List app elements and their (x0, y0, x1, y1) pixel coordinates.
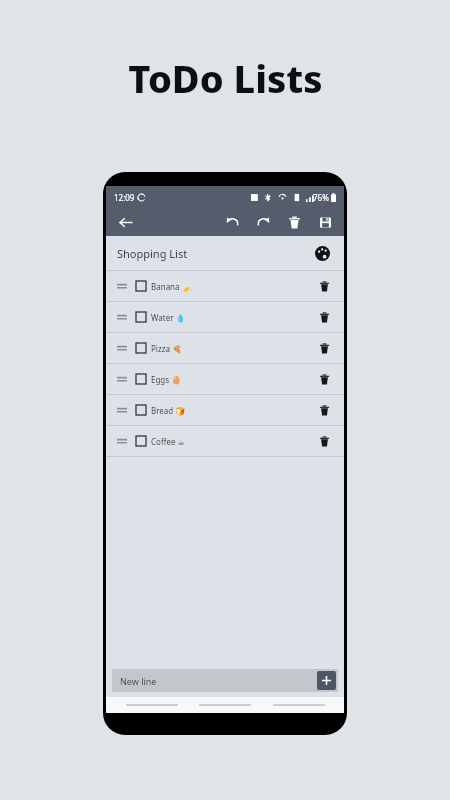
button[interactable]: Reorder (106, 271, 344, 301)
other: Reorder (117, 436, 127, 446)
button[interactable]: Redo (253, 212, 273, 232)
button[interactable]: Toggle Eggs (136, 374, 146, 384)
other: Reorder (117, 312, 127, 322)
other: Reorder (117, 281, 127, 291)
button[interactable]: Delete Pizza (315, 339, 333, 357)
button[interactable]: Save (315, 212, 335, 232)
button[interactable]: Add item (317, 671, 336, 690)
button[interactable]: Delete Water (315, 308, 333, 326)
button[interactable]: Nav (124, 697, 180, 713)
staticText: Water 💧 (151, 312, 186, 323)
staticText: 76% (313, 192, 329, 203)
button[interactable]: Toggle Water (136, 312, 146, 322)
button[interactable]: Toggle Pizza (136, 343, 146, 353)
button[interactable]: Delete Eggs (315, 370, 333, 388)
other: Reorder (117, 343, 127, 353)
button[interactable]: Reorder (106, 364, 344, 394)
staticText: Banana 🍌 (151, 281, 192, 292)
button[interactable]: Reorder (106, 426, 344, 456)
button[interactable]: Toggle Banana (136, 281, 146, 291)
other: Reorder (117, 374, 127, 384)
button[interactable]: Reorder (106, 302, 344, 332)
staticText: Coffee ☕ (151, 436, 185, 447)
button[interactable]: Reorder (106, 395, 344, 425)
staticText: Shopping List (117, 246, 188, 261)
button[interactable]: Theme (311, 242, 333, 264)
staticText: 12:09 (114, 192, 135, 203)
button[interactable]: Toggle Bread (136, 405, 146, 415)
button[interactable]: Undo (222, 212, 242, 232)
button[interactable]: New line (112, 669, 338, 692)
staticText: New line (120, 675, 157, 687)
button[interactable]: Nav (197, 697, 253, 713)
staticText: Bread 🍞 (151, 405, 186, 416)
other: Reorder (117, 405, 127, 415)
staticText: Eggs 🥚 (151, 374, 182, 385)
button[interactable]: Delete Bread (315, 401, 333, 419)
button[interactable]: Delete Coffee (315, 432, 333, 450)
staticText: ToDo Lists (128, 52, 323, 104)
staticText: Pizza 🍕 (151, 343, 182, 354)
button[interactable]: Toggle Coffee (136, 436, 146, 446)
button[interactable]: Delete (284, 212, 304, 232)
button[interactable]: Back (115, 212, 135, 232)
button[interactable]: Delete Banana (315, 277, 333, 295)
button[interactable]: Nav (271, 697, 327, 713)
button[interactable]: Reorder (106, 333, 344, 363)
